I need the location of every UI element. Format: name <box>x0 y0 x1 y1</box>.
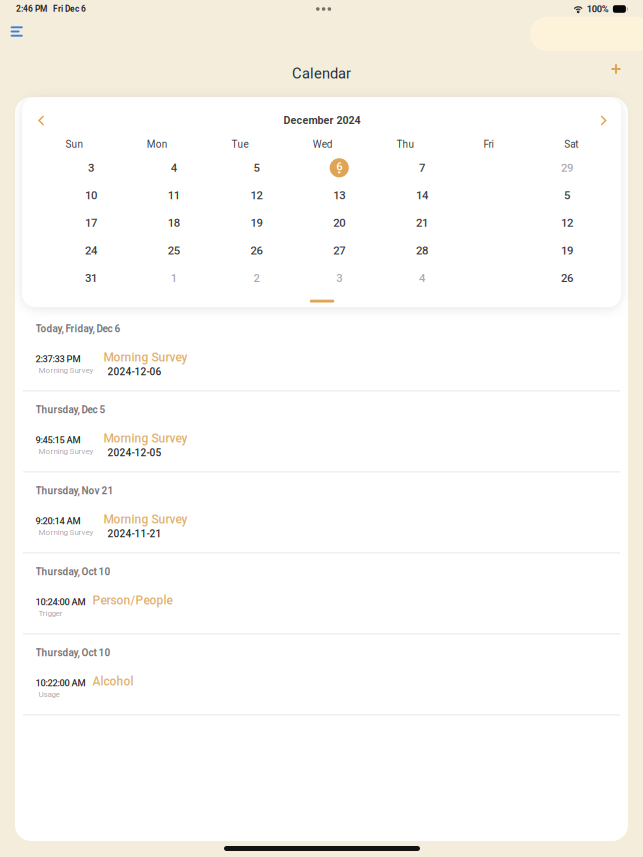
button[interactable]: Previous month <box>26 108 56 132</box>
staticText: Morning Survey <box>39 366 94 375</box>
staticText: Sun <box>65 138 83 150</box>
staticText: 28 <box>416 244 428 257</box>
staticText: Thu <box>397 138 415 150</box>
staticText: Morning Survey <box>104 350 188 364</box>
staticText: 100% <box>587 3 609 14</box>
staticText: 3 <box>336 272 342 285</box>
button[interactable]: 2:37:33 PM <box>15 310 628 390</box>
staticText: 5 <box>564 189 570 202</box>
staticText: 6 <box>336 160 342 173</box>
staticText: 7 <box>419 161 425 174</box>
staticText: Calendar <box>292 65 351 82</box>
staticText: December 2024 <box>283 114 360 126</box>
staticText: 24 <box>85 244 97 257</box>
staticText: Morning Survey <box>39 447 94 456</box>
staticText: 26 <box>250 244 262 257</box>
staticText: 2 <box>253 272 259 285</box>
button[interactable]: Next month <box>588 108 618 132</box>
staticText: Alcohol <box>93 674 134 689</box>
staticText: 3 <box>88 161 94 174</box>
staticText: 18 <box>168 216 180 230</box>
staticText: 17 <box>85 216 97 230</box>
staticText: 12 <box>561 216 573 230</box>
staticText: Thursday, Nov 21 <box>36 485 114 496</box>
button[interactable]: Add <box>603 56 629 82</box>
staticText: Morning Survey <box>104 431 188 445</box>
staticText: 21 <box>416 216 428 230</box>
staticText: Fri Dec 6 <box>53 4 86 14</box>
staticText: 1 <box>171 272 177 285</box>
staticText: 2024-12-06 <box>108 366 162 378</box>
button[interactable]: Menu <box>3 18 31 44</box>
staticText: 9:45:15 AM <box>36 435 81 445</box>
staticText: 26 <box>561 272 573 285</box>
staticText: 29 <box>561 161 573 174</box>
staticText: Trigger <box>39 609 63 618</box>
staticText: 2024-12-05 <box>108 447 162 459</box>
staticText: Thursday, Oct 10 <box>36 647 111 659</box>
staticText: Usage <box>39 690 60 699</box>
staticText: 4 <box>171 161 177 174</box>
staticText: 19 <box>250 216 262 230</box>
staticText: Thursday, Dec 5 <box>36 404 106 415</box>
staticText: Thursday, Oct 10 <box>36 566 111 578</box>
staticText: Wed <box>313 138 333 150</box>
staticText: Today, Friday, Dec 6 <box>36 323 121 334</box>
staticText: Sat <box>564 138 578 150</box>
button[interactable]: 9:20:14 AM <box>15 472 628 552</box>
staticText: 19 <box>561 244 573 257</box>
staticText: 25 <box>168 244 180 257</box>
staticText: Tue <box>231 138 248 150</box>
staticText: 2024-11-21 <box>108 528 162 540</box>
button[interactable]: 10:24:00 AM <box>15 553 628 633</box>
button[interactable]: 9:45:15 AM <box>15 391 628 471</box>
staticText: Morning Survey <box>104 512 188 526</box>
staticText: Person/People <box>93 593 173 608</box>
staticText: 5 <box>253 161 259 174</box>
staticText: Morning Survey <box>39 528 94 537</box>
staticText: 10:22:00 AM <box>36 678 86 688</box>
staticText: 20 <box>333 216 345 230</box>
staticText: 2:46 PM <box>16 4 47 14</box>
staticText: 27 <box>333 244 345 257</box>
staticText: Fri <box>483 138 493 150</box>
staticText: 2:37:33 PM <box>36 354 81 364</box>
staticText: 4 <box>419 272 425 285</box>
button[interactable]: 10:22:00 AM <box>15 634 628 714</box>
staticText: 14 <box>416 189 428 202</box>
staticText: 10 <box>85 189 97 202</box>
staticText: 12 <box>250 189 262 202</box>
staticText: 9:20:14 AM <box>36 516 81 526</box>
staticText: 13 <box>333 189 345 202</box>
staticText: 31 <box>85 272 97 285</box>
staticText: 11 <box>168 189 180 202</box>
staticText: 10:24:00 AM <box>36 597 86 607</box>
staticText: Mon <box>147 138 168 150</box>
